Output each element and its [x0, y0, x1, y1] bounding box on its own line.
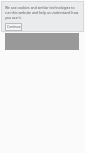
staticText: We use cookies and similar technologies …: [5, 5, 80, 20]
staticText: Continue: [7, 25, 21, 29]
button[interactable]: Continue: [5, 23, 22, 31]
